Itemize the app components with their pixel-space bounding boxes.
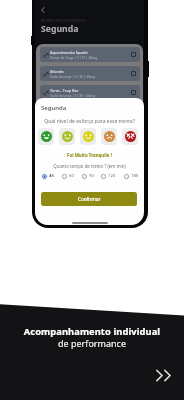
button[interactable]: Aquecimento Sparki	[40, 47, 140, 62]
staticText: Aquecimento Sparki	[50, 50, 88, 55]
staticText: Segunda	[41, 104, 67, 112]
staticText: 45	[49, 173, 54, 179]
button[interactable]: Afundo	[40, 66, 140, 81]
staticText: Confirmar	[78, 196, 101, 202]
staticText: Qual nível de esforço para esse treino?	[35, 118, 144, 125]
staticText: Tacka de carga | 5 / 35 | 40seg	[50, 94, 95, 98]
staticText: Acompanhamento individual	[0, 325, 184, 338]
button[interactable]: 45	[42, 173, 54, 179]
staticText: Supino Reto	[50, 107, 73, 112]
staticText: 90	[89, 173, 94, 179]
staticText: Quanto tempo de treino ? (em min)	[35, 163, 144, 169]
button[interactable]: Confirmar	[41, 192, 137, 206]
button[interactable]: Supino Reto	[40, 104, 140, 119]
staticText: Afundo	[50, 69, 64, 74]
button[interactable]: Terra - Trap Bar	[40, 85, 140, 100]
staticText: Tempo de Carga | 0 / 10 | 40seg	[50, 56, 98, 60]
button[interactable]: 90	[82, 173, 94, 179]
staticText: Tacka de carga | 5 / 35 | 40seg	[50, 75, 95, 79]
staticText: 120	[108, 173, 116, 179]
button[interactable]: Nivel 5	[122, 128, 138, 145]
button[interactable]: Voltar	[41, 7, 47, 13]
button[interactable]: Avançar	[155, 367, 177, 389]
button[interactable]: Nivel 1	[38, 128, 54, 145]
staticText: 180	[131, 173, 139, 179]
button[interactable]: 120	[101, 173, 116, 179]
button[interactable]: Nivel 3	[80, 128, 96, 145]
staticText: de performance	[0, 337, 184, 349]
staticText: Foi Muito Tranquilo !	[35, 152, 144, 158]
staticText: Terra - Trap Bar	[50, 88, 79, 93]
button[interactable]: Nivel 4	[101, 128, 117, 145]
button[interactable]: Nivel 2	[59, 128, 75, 145]
staticText: 60	[69, 173, 74, 179]
button[interactable]: 180	[124, 173, 139, 179]
staticText: MOMENTOS ANTERIORES	[41, 19, 86, 23]
staticText: Segunda	[41, 23, 79, 35]
button[interactable]: 60	[62, 173, 74, 179]
